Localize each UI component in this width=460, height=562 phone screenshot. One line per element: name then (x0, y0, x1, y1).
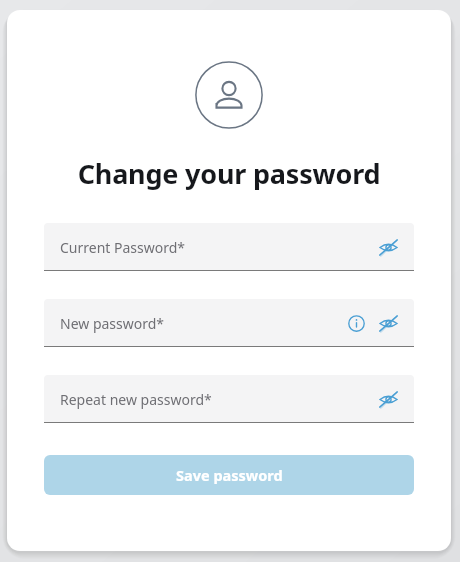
button[interactable]: Repeat new password* (44, 375, 414, 423)
button[interactable]: Current Password* (44, 223, 414, 271)
staticText: Repeat new password* (60, 390, 212, 409)
staticText: Save password (176, 465, 283, 485)
button[interactable]: Show password (374, 233, 402, 261)
button[interactable]: New password* (44, 299, 414, 347)
button[interactable]: Profile (195, 61, 263, 129)
button[interactable]: Show password (374, 309, 402, 337)
button[interactable]: Save password (44, 455, 414, 495)
staticText: Current Password* (60, 238, 186, 257)
staticText: Change your password (7, 155, 451, 192)
staticText: New password* (60, 314, 165, 333)
button[interactable]: Show password (374, 385, 402, 413)
button[interactable]: Password requirements (343, 310, 369, 336)
